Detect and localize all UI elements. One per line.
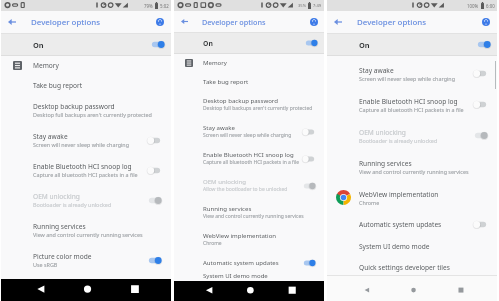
staticText: Desktop backup password <box>203 97 278 105</box>
staticText: Developer options <box>202 17 266 27</box>
staticText: Enable Bluetooth HCI snoop log <box>359 97 458 106</box>
staticText: Automatic system updates <box>203 259 279 267</box>
staticText: Capture all bluetooth HCI packets in a f… <box>203 159 300 166</box>
staticText: Memory <box>33 61 59 70</box>
staticText: 7:49 <box>313 3 322 9</box>
staticText: 5:02 <box>160 3 169 9</box>
staticText: OEM unlocking <box>203 178 247 186</box>
button[interactable]: Toggle <box>301 153 317 165</box>
button[interactable]: Running services <box>327 151 497 182</box>
button[interactable]: On <box>174 33 324 53</box>
button[interactable]: Toggle <box>472 129 489 142</box>
button[interactable]: Toggle <box>146 164 163 177</box>
button[interactable]: Automatic system updates <box>327 213 497 235</box>
staticText: Running services <box>359 159 412 168</box>
staticText: Chrome <box>203 240 222 247</box>
button[interactable]: System UI demo mode <box>174 272 324 280</box>
button[interactable]: On <box>1 34 171 55</box>
button[interactable]: Desktop backup password <box>1 95 171 125</box>
button[interactable]: Help <box>153 15 167 29</box>
button[interactable]: Running services <box>174 199 324 226</box>
staticText: On <box>33 40 44 50</box>
staticText: On <box>203 39 213 48</box>
staticText: Developer options <box>357 17 427 28</box>
button[interactable]: Toggle <box>472 98 489 111</box>
staticText: Memory <box>203 59 227 67</box>
button[interactable]: OEM unlocking <box>1 185 171 215</box>
staticText: Bootloader is already unlocked <box>359 137 438 144</box>
button[interactable]: Enable Bluetooth HCI snoop log <box>327 89 497 120</box>
staticText: 6:00 <box>486 3 495 9</box>
button[interactable]: Enable Bluetooth HCI snoop log <box>1 155 171 185</box>
button[interactable]: Stay awake <box>174 118 324 145</box>
button[interactable]: OEM unlocking <box>174 172 324 199</box>
staticText: Picture color mode <box>33 252 92 261</box>
button[interactable]: WebView implementation <box>327 182 497 213</box>
button[interactable]: Help <box>307 15 320 28</box>
staticText: Take bug report <box>33 81 83 90</box>
button[interactable]: Stay awake <box>1 125 171 155</box>
staticText: Desktop full backups aren't currently pr… <box>203 105 313 112</box>
button[interactable]: Take bug report <box>174 72 324 91</box>
button[interactable]: Back <box>5 15 19 29</box>
staticText: OEM unlocking <box>33 192 80 201</box>
staticText: Enable Bluetooth HCI snoop log <box>33 162 132 171</box>
button[interactable]: Take bug report <box>1 75 171 95</box>
button[interactable]: On <box>327 34 497 55</box>
staticText: Take bug report <box>203 78 249 86</box>
button[interactable]: Quick settings developer tiles <box>327 257 497 277</box>
staticText: Screen will never sleep while charging <box>203 132 292 139</box>
staticText: WebView implementation <box>203 232 277 240</box>
staticText: View and control currently running servi… <box>203 213 304 220</box>
staticText: OEM unlocking <box>359 128 406 137</box>
button[interactable]: Stay awake <box>327 58 497 89</box>
staticText: WebView implementation <box>359 190 439 199</box>
button[interactable]: Toggle <box>149 38 166 51</box>
button[interactable]: Enable Bluetooth HCI snoop log <box>174 145 324 172</box>
button[interactable]: Toggle <box>475 38 492 51</box>
button[interactable]: Toggle <box>472 67 489 80</box>
button[interactable]: Help <box>479 15 493 29</box>
staticText: Quick settings developer tiles <box>359 263 450 272</box>
button[interactable]: Toggle <box>301 257 317 269</box>
staticText: Developer options <box>31 17 101 28</box>
button[interactable]: Automatic system updates <box>174 253 324 272</box>
button[interactable]: Toggle <box>472 218 489 231</box>
staticText: Screen will never sleep while charging <box>359 75 455 82</box>
staticText: 35% <box>298 3 306 9</box>
staticText: Bootloader is already unlocked <box>33 201 112 208</box>
staticText: View and control currently running servi… <box>359 168 469 175</box>
staticText: Chrome <box>359 199 380 206</box>
button[interactable]: Running services <box>1 215 171 245</box>
staticText: 79% <box>144 3 153 9</box>
staticText: Desktop full backups aren't currently pr… <box>33 111 152 118</box>
staticText: Stay awake <box>33 132 68 141</box>
staticText: System UI demo mode <box>203 272 268 280</box>
button[interactable]: OEM unlocking <box>327 120 497 151</box>
staticText: Allow the bootloader to be unlocked <box>203 186 288 193</box>
staticText: 100% <box>467 3 479 9</box>
button[interactable]: Toggle <box>146 194 163 207</box>
button[interactable]: Toggle <box>146 134 163 147</box>
button[interactable]: Back <box>178 15 191 28</box>
button[interactable]: Memory <box>1 55 171 75</box>
staticText: Capture all bluetooth HCI packets in a f… <box>33 171 138 178</box>
button[interactable]: Picture color mode <box>1 245 171 275</box>
button[interactable]: Back <box>331 15 345 29</box>
button[interactable]: Toggle <box>301 126 317 138</box>
staticText: Enable Bluetooth HCI snoop log <box>203 151 294 159</box>
button[interactable]: System UI demo mode <box>327 235 497 257</box>
staticText: Stay awake <box>203 124 235 132</box>
button[interactable]: Toggle <box>146 254 163 267</box>
button[interactable]: Memory <box>174 53 324 72</box>
staticText: Running services <box>33 222 86 231</box>
button[interactable]: Toggle <box>301 180 317 192</box>
staticText: Use sRGB <box>33 261 58 268</box>
button[interactable]: WebView implementation <box>174 226 324 253</box>
staticText: Capture all bluetooth HCI packets in a f… <box>359 106 464 113</box>
staticText: Running services <box>203 205 252 213</box>
button[interactable]: Desktop backup password <box>174 91 324 118</box>
staticText: Automatic system updates <box>359 220 442 229</box>
staticText: View and control currently running servi… <box>33 231 143 238</box>
button[interactable]: Toggle <box>303 37 319 49</box>
